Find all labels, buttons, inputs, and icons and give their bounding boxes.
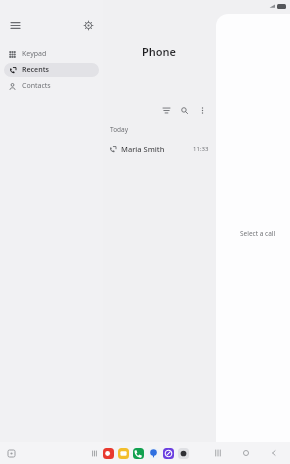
- button[interactable]: Contacts: [4, 79, 99, 93]
- button[interactable]: Settings: [79, 16, 97, 34]
- staticText: Contacts: [22, 81, 51, 91]
- button[interactable]: All apps: [90, 449, 99, 458]
- button[interactable]: Home: [240, 447, 252, 459]
- button[interactable]: Back: [268, 447, 280, 459]
- button[interactable]: App: [103, 448, 114, 459]
- staticText: Keypad: [22, 49, 47, 59]
- button[interactable]: Maria Smith: [103, 140, 216, 158]
- staticText: Recents: [22, 65, 49, 75]
- staticText: Maria Smith: [121, 144, 165, 154]
- button[interactable]: More options: [195, 103, 209, 117]
- button[interactable]: App: [133, 448, 144, 459]
- staticText: Select a call from: [240, 229, 290, 238]
- staticText: Today: [110, 125, 129, 134]
- button[interactable]: Apps: [6, 448, 17, 459]
- button[interactable]: Recent apps: [212, 447, 224, 459]
- button[interactable]: Search: [177, 103, 191, 117]
- button[interactable]: App: [118, 448, 129, 459]
- button[interactable]: Keypad: [4, 47, 99, 61]
- staticText: 11:33: [193, 145, 209, 153]
- button[interactable]: App: [178, 448, 189, 459]
- staticText: Phone: [142, 44, 177, 59]
- button[interactable]: Menu: [6, 16, 24, 34]
- button[interactable]: Filter: [159, 103, 173, 117]
- button[interactable]: Recents: [4, 63, 99, 77]
- button[interactable]: App: [163, 448, 174, 459]
- button[interactable]: App: [148, 448, 159, 459]
